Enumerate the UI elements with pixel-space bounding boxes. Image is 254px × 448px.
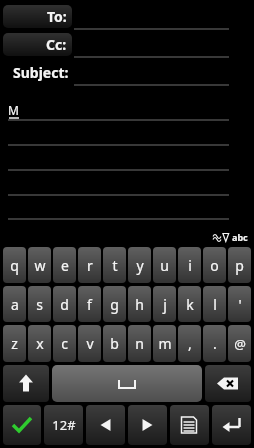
staticText: f bbox=[87, 295, 92, 314]
button[interactable]: i bbox=[178, 247, 201, 283]
button[interactable]: , bbox=[178, 325, 201, 362]
button[interactable]: x bbox=[28, 325, 51, 362]
staticText: abc bbox=[232, 231, 248, 243]
button[interactable]: w bbox=[28, 247, 51, 283]
button[interactable]: m bbox=[153, 325, 176, 362]
button[interactable]: y bbox=[128, 247, 151, 283]
staticText: e bbox=[61, 256, 69, 275]
button[interactable]: Input mode abc bbox=[213, 231, 248, 243]
button[interactable]: b bbox=[103, 325, 126, 362]
staticText: To: bbox=[47, 7, 67, 26]
button[interactable]: c bbox=[53, 325, 76, 362]
staticText: o bbox=[210, 256, 219, 275]
button[interactable]: u bbox=[153, 247, 176, 283]
staticText: a bbox=[11, 295, 19, 314]
staticText: z bbox=[11, 334, 18, 353]
staticText: i bbox=[188, 256, 192, 275]
button[interactable]: Move right bbox=[128, 405, 167, 445]
button[interactable]: g bbox=[103, 286, 126, 322]
staticText: t bbox=[112, 256, 118, 275]
staticText: d bbox=[60, 295, 69, 314]
button[interactable]: v bbox=[78, 325, 101, 362]
button[interactable]: Numbers and symbols bbox=[44, 405, 83, 445]
staticText: l bbox=[213, 295, 217, 314]
button[interactable]: Cc: bbox=[3, 33, 72, 56]
staticText: , bbox=[188, 334, 192, 353]
button[interactable]: d bbox=[53, 286, 76, 322]
staticText: b bbox=[110, 334, 119, 353]
button[interactable]: s bbox=[28, 286, 51, 322]
button[interactable]: ' bbox=[228, 286, 251, 322]
staticText: y bbox=[136, 256, 144, 275]
staticText: c bbox=[61, 334, 68, 353]
button[interactable]: Move left bbox=[86, 405, 125, 445]
button[interactable]: z bbox=[3, 325, 26, 362]
staticText: w bbox=[34, 256, 46, 275]
staticText: j bbox=[163, 295, 167, 314]
staticText: Cc: bbox=[46, 35, 67, 54]
button[interactable]: j bbox=[153, 286, 176, 322]
staticText: s bbox=[36, 295, 43, 314]
button[interactable]: To: bbox=[3, 5, 72, 28]
staticText: k bbox=[186, 295, 194, 314]
staticText: M bbox=[8, 102, 19, 118]
button[interactable]: Options menu bbox=[170, 405, 209, 445]
button[interactable]: l bbox=[203, 286, 226, 322]
button[interactable]: Space bbox=[52, 365, 202, 402]
button[interactable]: e bbox=[53, 247, 76, 283]
staticText: 12# bbox=[52, 416, 76, 434]
staticText: . bbox=[213, 334, 217, 353]
staticText: Subject: bbox=[13, 63, 69, 82]
button[interactable]: q bbox=[3, 247, 26, 283]
staticText: q bbox=[10, 256, 19, 275]
staticText: v bbox=[86, 334, 94, 353]
staticText: @ bbox=[234, 335, 246, 353]
button[interactable]: M bbox=[8, 101, 229, 119]
staticText: x bbox=[36, 334, 44, 353]
staticText: n bbox=[135, 334, 144, 353]
button[interactable]: Accept bbox=[3, 405, 41, 445]
staticText: r bbox=[87, 256, 93, 275]
staticText: p bbox=[235, 256, 244, 275]
button[interactable]: o bbox=[203, 247, 226, 283]
button[interactable]: . bbox=[203, 325, 226, 362]
button[interactable]: h bbox=[128, 286, 151, 322]
button[interactable]: @ bbox=[228, 325, 251, 362]
button[interactable]: n bbox=[128, 325, 151, 362]
button[interactable]: Shift bbox=[3, 365, 49, 402]
staticText: g bbox=[110, 295, 119, 314]
button[interactable]: Subject: bbox=[3, 61, 72, 84]
staticText: ' bbox=[238, 295, 242, 314]
button[interactable]: r bbox=[78, 247, 101, 283]
button[interactable]: f bbox=[78, 286, 101, 322]
button[interactable]: t bbox=[103, 247, 126, 283]
button[interactable]: k bbox=[178, 286, 201, 322]
staticText: u bbox=[160, 256, 169, 275]
button[interactable]: p bbox=[228, 247, 251, 283]
button[interactable]: Enter bbox=[212, 405, 251, 445]
button[interactable]: a bbox=[3, 286, 26, 322]
staticText: m bbox=[158, 334, 172, 353]
staticText: h bbox=[135, 295, 144, 314]
button[interactable]: Backspace bbox=[205, 365, 251, 402]
